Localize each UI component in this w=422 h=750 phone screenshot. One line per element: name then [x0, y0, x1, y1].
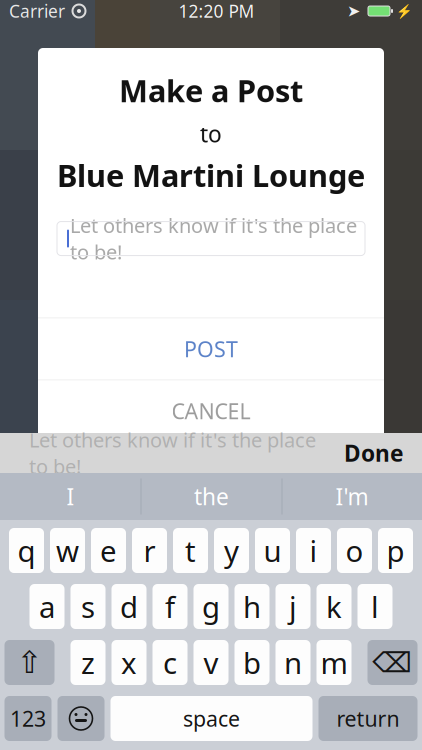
- button[interactable]: l: [357, 584, 392, 629]
- staticText: I: [66, 481, 74, 511]
- staticText: Blue Martini Lounge: [57, 155, 365, 195]
- staticText: return: [336, 704, 399, 733]
- staticText: n: [284, 643, 302, 682]
- staticText: u: [263, 531, 281, 570]
- staticText: ⚡: [396, 3, 413, 19]
- staticText: the: [194, 481, 229, 511]
- staticText: g: [202, 587, 220, 626]
- staticText: e: [100, 531, 117, 570]
- staticText: space: [183, 704, 240, 733]
- staticText: to: [200, 119, 222, 149]
- staticText: w: [56, 531, 79, 570]
- staticText: Make a Post: [119, 70, 303, 111]
- button[interactable]: return: [318, 696, 417, 741]
- staticText: q: [17, 531, 35, 570]
- staticText: t: [185, 531, 196, 570]
- staticText: CANCEL: [171, 397, 250, 425]
- button[interactable]: space: [110, 696, 312, 741]
- staticText: ⇧: [16, 645, 42, 680]
- button[interactable]: Delete: [367, 640, 417, 685]
- staticText: POST: [184, 335, 238, 363]
- staticText: m: [320, 643, 347, 682]
- button[interactable]: p: [378, 528, 413, 573]
- staticText: Let others know if it's the place to be!: [70, 212, 357, 265]
- button[interactable]: the: [141, 473, 281, 520]
- button[interactable]: g: [193, 584, 228, 629]
- staticText: h: [243, 587, 261, 626]
- staticText: v: [203, 643, 218, 682]
- staticText: p: [386, 531, 404, 570]
- staticText: l: [371, 587, 379, 626]
- button[interactable]: I: [0, 473, 140, 520]
- button[interactable]: d: [111, 584, 146, 629]
- button[interactable]: CANCEL: [38, 381, 384, 442]
- button[interactable]: i: [296, 528, 331, 573]
- button[interactable]: 123: [4, 696, 51, 741]
- button[interactable]: r: [132, 528, 167, 573]
- staticText: Let others know if it's the place to be!: [29, 426, 316, 479]
- staticText: k: [326, 587, 342, 626]
- staticText: ➤: [347, 2, 360, 20]
- button[interactable]: q: [9, 528, 44, 573]
- button[interactable]: j: [275, 584, 310, 629]
- staticText: s: [81, 587, 95, 626]
- staticText: Carrier: [9, 0, 65, 22]
- staticText: i: [309, 531, 317, 570]
- button[interactable]: Emoji keyboard: [57, 696, 104, 741]
- button[interactable]: a: [29, 584, 64, 629]
- button[interactable]: I'm: [282, 473, 421, 520]
- staticText: z: [81, 643, 95, 682]
- button[interactable]: v: [193, 640, 228, 685]
- staticText: j: [289, 587, 297, 626]
- staticText: c: [163, 643, 177, 682]
- button[interactable]: b: [234, 640, 269, 685]
- button[interactable]: s: [70, 584, 105, 629]
- button[interactable]: y: [214, 528, 249, 573]
- staticText: r: [143, 531, 155, 570]
- staticText: d: [120, 587, 138, 626]
- button[interactable]: c: [152, 640, 187, 685]
- button[interactable]: z: [70, 640, 105, 685]
- button[interactable]: e: [91, 528, 126, 573]
- staticText: y: [224, 531, 239, 570]
- staticText: o: [345, 531, 363, 570]
- button[interactable]: Shift: [4, 640, 54, 685]
- button[interactable]: u: [255, 528, 290, 573]
- button[interactable]: f: [152, 584, 187, 629]
- staticText: x: [121, 643, 137, 682]
- button[interactable]: n: [275, 640, 310, 685]
- button[interactable]: POST: [38, 319, 384, 380]
- staticText: a: [39, 587, 55, 626]
- staticText: 12:20 PM: [178, 0, 254, 22]
- button[interactable]: k: [316, 584, 351, 629]
- staticText: I'm: [335, 481, 368, 511]
- staticText: 123: [10, 704, 46, 733]
- staticText: Done: [344, 438, 404, 468]
- button[interactable]: Done: [336, 430, 412, 476]
- button[interactable]: m: [316, 640, 351, 685]
- button[interactable]: t: [173, 528, 208, 573]
- staticText: b: [243, 643, 261, 682]
- staticText: ⌫: [372, 647, 412, 678]
- button[interactable]: w: [50, 528, 85, 573]
- button[interactable]: x: [111, 640, 146, 685]
- button[interactable]: h: [234, 584, 269, 629]
- staticText: f: [165, 587, 175, 626]
- button[interactable]: o: [337, 528, 372, 573]
